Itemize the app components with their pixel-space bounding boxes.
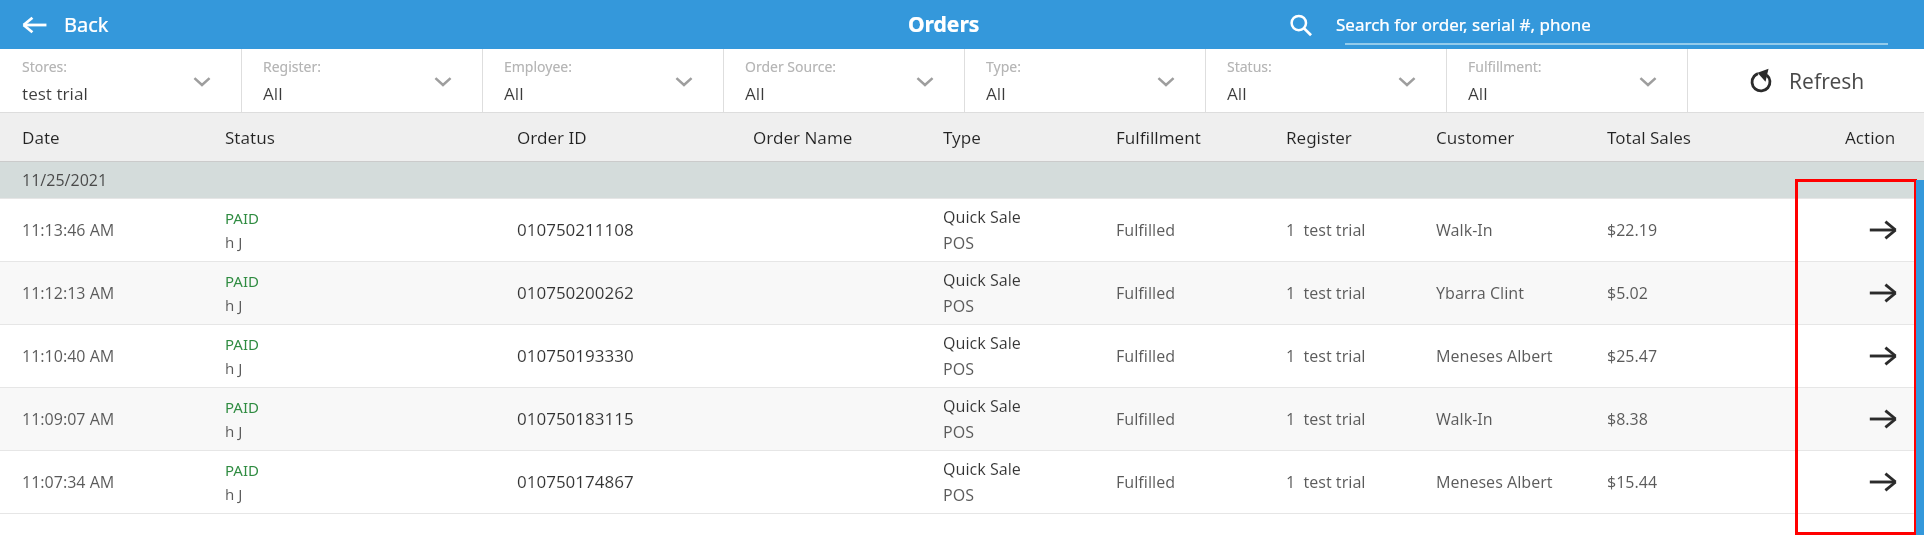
staticText: Order Name — [753, 126, 853, 149]
other: Refresh — [1747, 68, 1775, 96]
button[interactable]: 11:07:34 AM — [0, 450, 1924, 513]
staticText: Register — [1286, 126, 1352, 149]
button[interactable]: View order details — [1798, 387, 1914, 450]
button[interactable]: View order details — [1798, 450, 1914, 513]
staticText: h J — [225, 484, 243, 504]
other: Change Status: — [1398, 72, 1416, 90]
staticText: POS — [943, 484, 974, 506]
other: View order details — [1868, 467, 1898, 497]
staticText: POS — [943, 421, 974, 443]
button[interactable]: Order Source: — [723, 49, 964, 113]
staticText: Search for order, serial #, phone — [1336, 13, 1591, 36]
button[interactable]: View order details — [1798, 261, 1914, 324]
staticText: PAID — [225, 208, 259, 228]
button[interactable]: Type: — [964, 49, 1205, 113]
button[interactable]: 11:09:07 AM — [0, 387, 1924, 450]
staticText: Fulfillment: — [1468, 57, 1542, 76]
staticText: 010750211108 — [517, 218, 634, 241]
staticText: 1 test trial — [1286, 282, 1366, 304]
staticText: Total Sales — [1607, 126, 1692, 149]
staticText: All — [263, 82, 283, 105]
staticText: 11:10:40 AM — [22, 345, 115, 367]
staticText: 11:09:07 AM — [22, 408, 115, 430]
staticText: Quick Sale — [943, 332, 1021, 354]
staticText: POS — [943, 358, 974, 380]
staticText: Fulfillment — [1116, 126, 1201, 149]
staticText: Type — [943, 126, 981, 149]
staticText: Orders — [908, 10, 980, 39]
staticText: PAID — [225, 271, 259, 291]
button[interactable]: 11:13:46 AM — [0, 198, 1924, 261]
staticText: 11:12:13 AM — [22, 282, 115, 304]
other: Change Type: — [1157, 72, 1175, 90]
button[interactable]: Back — [8, 0, 123, 49]
staticText: 11:13:46 AM — [22, 219, 115, 241]
staticText: Quick Sale — [943, 269, 1021, 291]
staticText: Action — [1845, 126, 1896, 149]
staticText: 1 test trial — [1286, 408, 1366, 430]
staticText: h J — [225, 232, 243, 252]
staticText: Back — [64, 11, 109, 38]
other: Change Register: — [434, 72, 452, 90]
staticText: All — [986, 82, 1006, 105]
staticText: $5.02 — [1607, 282, 1648, 304]
staticText: Walk-In — [1436, 219, 1493, 241]
staticText: All — [1468, 82, 1488, 105]
staticText: Refresh — [1789, 67, 1865, 96]
staticText: h J — [225, 358, 243, 378]
staticText: test trial — [22, 82, 88, 105]
staticText: Walk-In — [1436, 408, 1493, 430]
staticText: Date — [22, 126, 60, 149]
button[interactable]: Fulfillment: — [1446, 49, 1687, 113]
other: View order details — [1868, 404, 1898, 434]
staticText: Quick Sale — [943, 395, 1021, 417]
staticText: 010750200262 — [517, 281, 634, 304]
staticText: 11/25/2021 — [22, 169, 108, 191]
other: Change Order Source: — [916, 72, 934, 90]
staticText: Order Source: — [745, 57, 837, 76]
staticText: Stores: — [22, 57, 68, 76]
staticText: Fulfilled — [1116, 345, 1176, 367]
other: View order details — [1868, 278, 1898, 308]
staticText: $8.38 — [1607, 408, 1648, 430]
staticText: POS — [943, 295, 974, 317]
staticText: 11:07:34 AM — [22, 471, 115, 493]
other: Back — [22, 12, 48, 38]
staticText: POS — [943, 232, 974, 254]
staticText: PAID — [225, 397, 259, 417]
staticText: 1 test trial — [1286, 471, 1366, 493]
staticText: 010750183115 — [517, 407, 634, 430]
staticText: Quick Sale — [943, 206, 1021, 228]
button[interactable]: Stores: — [0, 49, 241, 113]
staticText: 1 test trial — [1286, 219, 1366, 241]
other: Search — [1288, 13, 1312, 37]
staticText: 1 test trial — [1286, 345, 1366, 367]
staticText: Status: — [1227, 57, 1272, 76]
staticText: Meneses Albert — [1436, 471, 1553, 493]
staticText: h J — [225, 421, 243, 441]
button[interactable]: 11:10:40 AM — [0, 324, 1924, 387]
staticText: Employee: — [504, 57, 572, 76]
button[interactable]: View order details — [1798, 198, 1914, 261]
staticText: 010750193330 — [517, 344, 634, 367]
staticText: Fulfilled — [1116, 282, 1176, 304]
staticText: All — [504, 82, 524, 105]
button[interactable]: Search — [1288, 0, 1913, 49]
staticText: Order ID — [517, 126, 587, 149]
staticText: Customer — [1436, 126, 1515, 149]
staticText: Status — [225, 126, 275, 149]
staticText: Meneses Albert — [1436, 345, 1553, 367]
staticText: Fulfilled — [1116, 471, 1176, 493]
staticText: Fulfilled — [1116, 219, 1176, 241]
button[interactable]: Status: — [1205, 49, 1446, 113]
button[interactable]: Register: — [241, 49, 482, 113]
button[interactable]: View order details — [1798, 324, 1914, 387]
staticText: Quick Sale — [943, 458, 1021, 480]
staticText: Fulfilled — [1116, 408, 1176, 430]
staticText: PAID — [225, 460, 259, 480]
staticText: All — [745, 82, 765, 105]
button[interactable]: Employee: — [482, 49, 723, 113]
button[interactable]: 11:12:13 AM — [0, 261, 1924, 324]
button[interactable]: Refresh — [1731, 57, 1881, 106]
staticText: Ybarra Clint — [1436, 282, 1524, 304]
